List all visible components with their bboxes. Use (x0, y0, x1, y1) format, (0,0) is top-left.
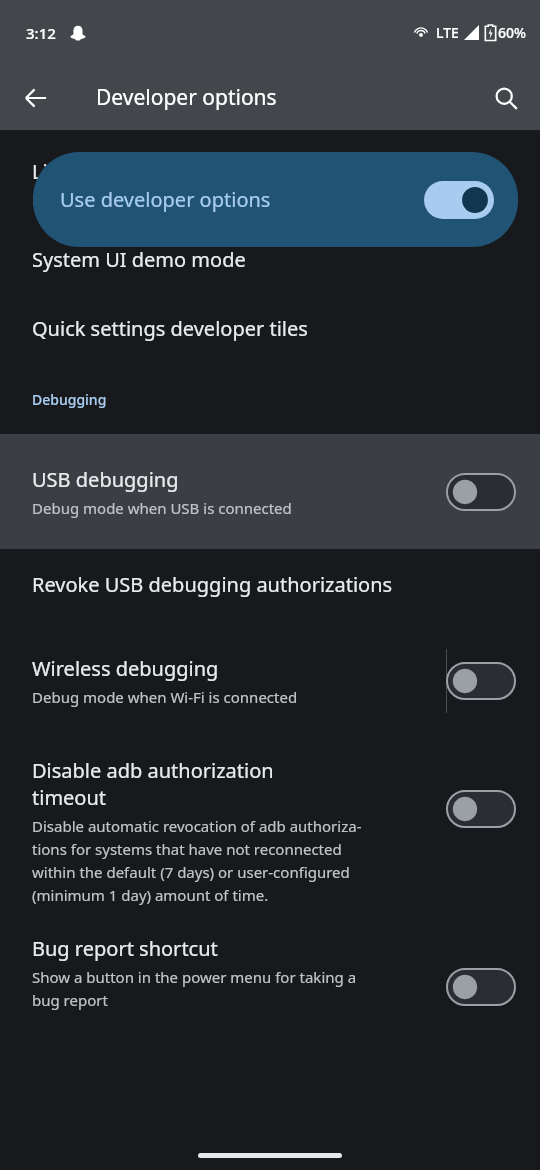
staticText: Wireless debugging (32, 655, 219, 682)
staticText: Debug mode when USB is connected (32, 498, 292, 518)
staticText: Quick settings developer tiles (32, 315, 308, 342)
button[interactable]: Disable adb authorization timeout (0, 757, 540, 905)
button[interactable]: Use developer options (33, 152, 518, 247)
staticText: Linux container (32, 158, 178, 185)
staticText: Bug report shortcut (32, 935, 218, 962)
staticText: 60% (498, 23, 526, 42)
staticText: 3:12 (26, 23, 56, 43)
staticText: Load a Dynamic System Update Image (32, 189, 304, 209)
button[interactable]: Wireless debugging (0, 638, 540, 723)
staticText: USB debugging (32, 466, 179, 493)
staticText: Use developer options (60, 186, 271, 213)
button[interactable]: Quick settings developer tiles (0, 315, 540, 342)
button[interactable]: Revoke USB debugging authorizations (0, 571, 540, 598)
staticText: Developer options (96, 83, 277, 112)
staticText: Show a button in the power menu for taki… (32, 967, 357, 1010)
button[interactable]: USB debugging (0, 434, 540, 549)
button[interactable]: Back (12, 74, 60, 122)
button[interactable]: System UI demo mode (0, 246, 540, 273)
staticText: LTE (436, 23, 459, 42)
staticText: Debugging (32, 390, 107, 409)
staticText: Debug mode when Wi-Fi is connected (32, 687, 298, 707)
staticText: Disable adb authorization timeout (32, 757, 274, 811)
button[interactable]: Search (482, 74, 530, 122)
staticText: Disable automatic revocation of adb auth… (32, 816, 362, 905)
button[interactable]: Linux container (0, 130, 540, 209)
staticText: System UI demo mode (32, 246, 246, 273)
staticText: Revoke USB debugging authorizations (32, 571, 393, 598)
button[interactable]: Bug report shortcut (0, 935, 540, 1010)
